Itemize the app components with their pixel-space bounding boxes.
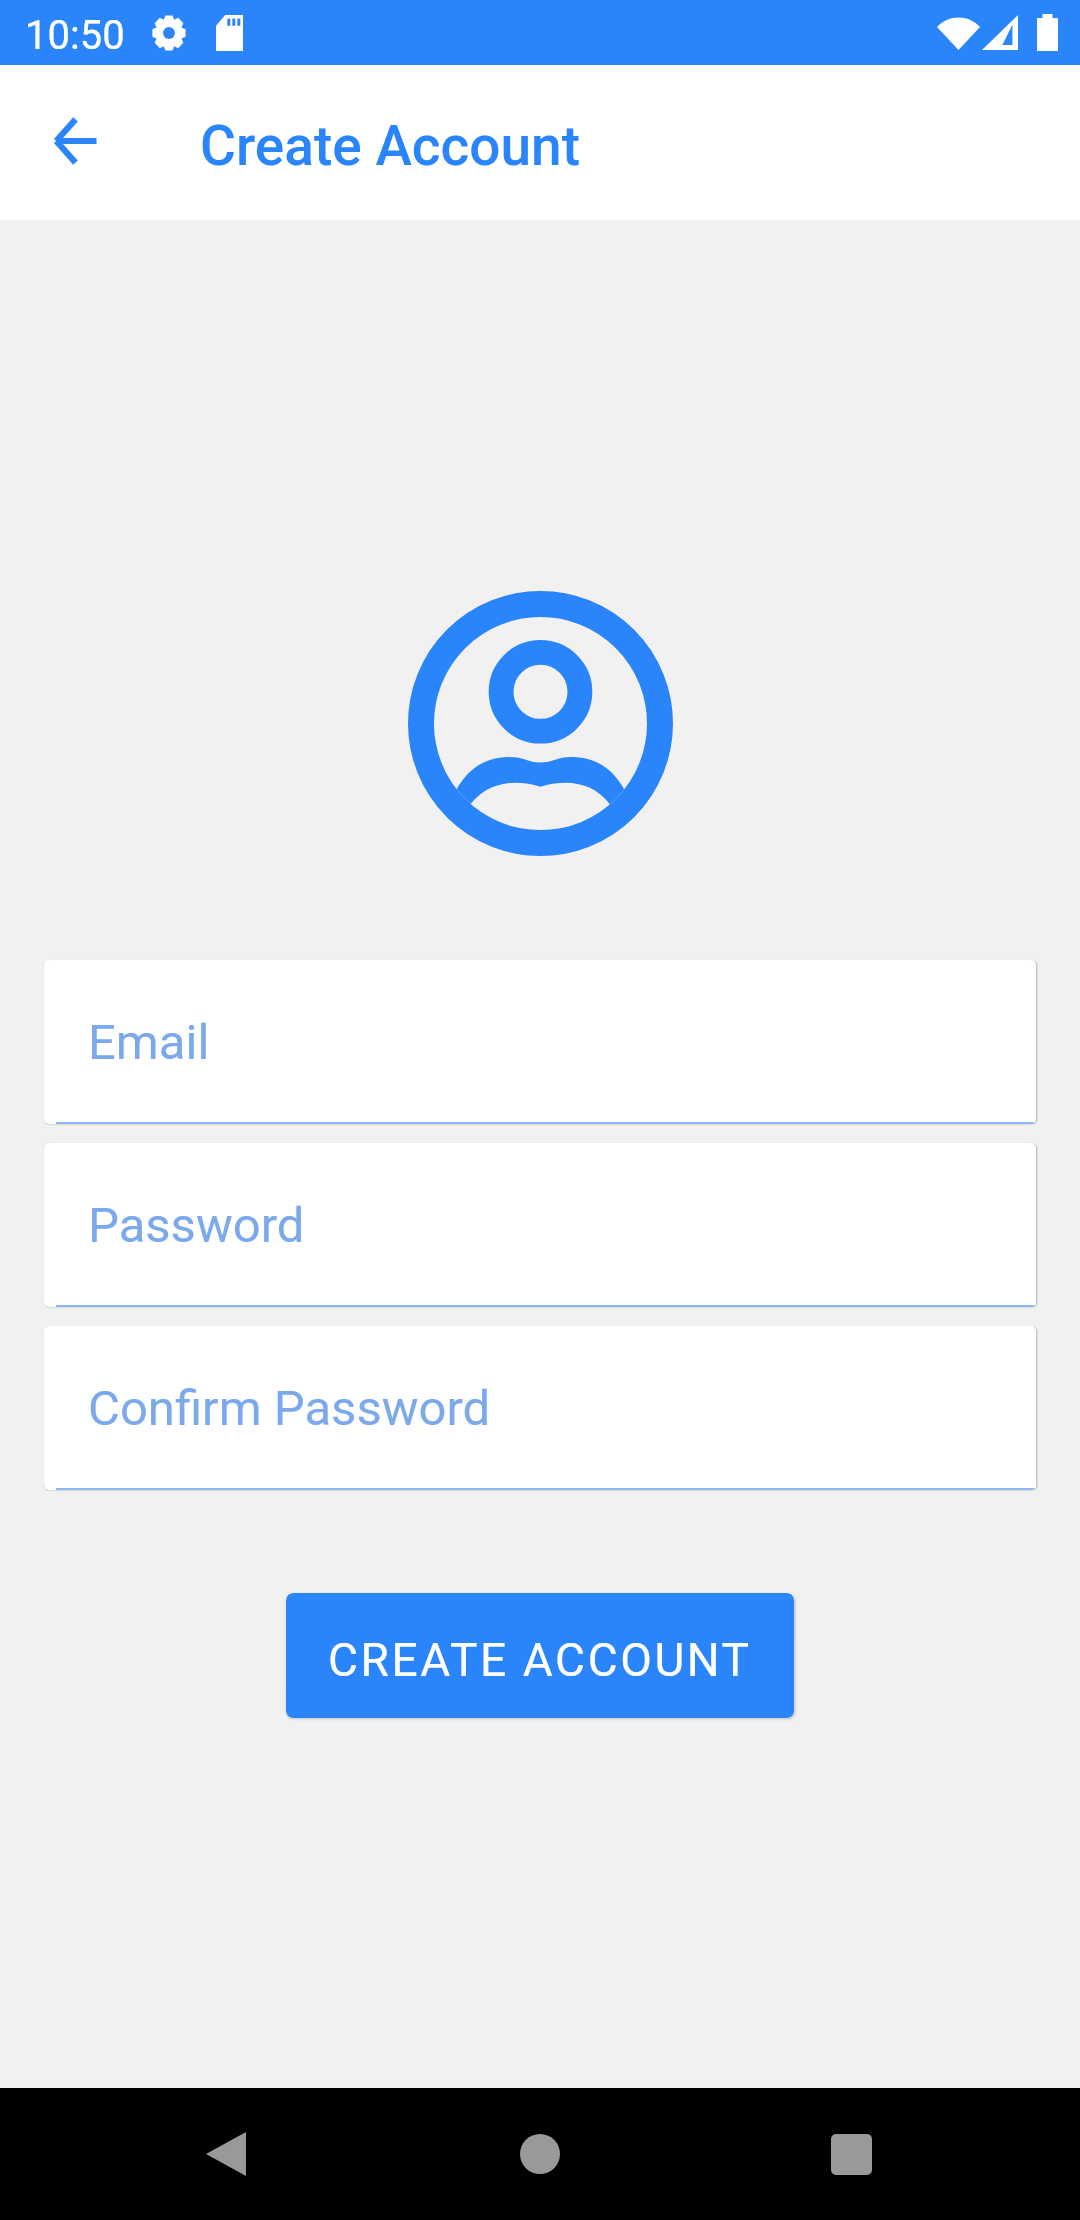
button[interactable]: Back	[171, 2099, 281, 2209]
staticText: Create Account	[200, 114, 581, 178]
staticText: Confirm Password	[88, 1380, 491, 1437]
button[interactable]: Confirm Password	[44, 1326, 1036, 1490]
button[interactable]: Email	[44, 960, 1036, 1124]
button[interactable]: Password	[44, 1143, 1036, 1307]
button[interactable]: CREATE ACCOUNT	[286, 1593, 794, 1718]
button[interactable]: Recents	[796, 2099, 906, 2209]
staticText: CREATE ACCOUNT	[328, 1633, 752, 1687]
staticText: Email	[88, 1014, 210, 1071]
button[interactable]: Home	[485, 2099, 595, 2209]
button[interactable]: Back	[21, 86, 130, 195]
staticText: Password	[88, 1197, 305, 1254]
staticText: 10:50	[25, 12, 125, 59]
